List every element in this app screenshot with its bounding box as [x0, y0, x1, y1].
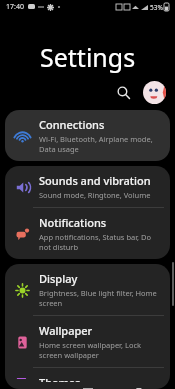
staticText: Home screen wallpaper, Lock screen wallp…: [39, 340, 162, 360]
staticText: Notifications: [39, 215, 107, 230]
button[interactable]: Notifications: [5, 208, 170, 259]
staticText: Themes: [39, 375, 81, 382]
button[interactable]: Wallpaper: [5, 316, 170, 367]
staticText: 53%: [150, 3, 163, 12]
staticText: Sounds and vibration: [39, 173, 151, 188]
button[interactable]: Sounds and vibration: [5, 166, 170, 207]
button[interactable]: Search: [111, 80, 135, 104]
button[interactable]: Connections: [5, 110, 170, 161]
button[interactable]: Themes: [5, 368, 170, 389]
staticText: Brightness, Blue light filter, Home scre…: [39, 288, 162, 308]
staticText: Settings: [40, 40, 136, 74]
staticText: Display: [39, 271, 78, 286]
staticText: Wi-Fi, Bluetooth, Airplane mode, Data us…: [39, 134, 162, 154]
staticText: Sound mode, Ringtone, Volume: [39, 190, 151, 200]
staticText: Wallpaper: [39, 323, 93, 338]
staticText: App notifications, Status bar, Do not di…: [39, 232, 162, 252]
staticText: 17:40: [6, 2, 24, 12]
button[interactable]: Account: [143, 81, 166, 104]
button[interactable]: Display: [5, 264, 170, 315]
staticText: Connections: [39, 117, 105, 132]
